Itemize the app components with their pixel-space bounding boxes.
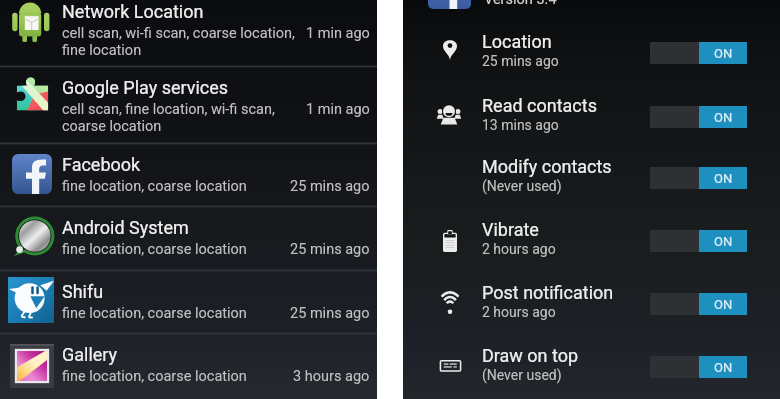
staticText: ON [714, 171, 733, 186]
staticText: coarse location [62, 118, 162, 135]
staticText: (Never used) [482, 178, 562, 194]
staticText: Location [482, 31, 552, 52]
staticText: cell scan, fine location, wi-fi scan, [62, 101, 275, 118]
other: Gallery icon [10, 344, 54, 388]
button[interactable]: Toggle Draw on top [650, 356, 747, 378]
button[interactable]: Toggle Vibrate [650, 230, 747, 252]
staticText: 1 min ago [306, 101, 370, 118]
staticText: 1 min ago [306, 25, 370, 42]
staticText: Vibrate [482, 219, 539, 240]
button[interactable]: Facebook icon [0, 144, 377, 206]
staticText: Draw on top [482, 345, 579, 366]
staticText: Shifu [62, 281, 104, 302]
staticText: Post notification [482, 282, 614, 303]
staticText: fine location [62, 42, 142, 59]
button[interactable]: Google Play services icon [0, 67, 377, 143]
staticText: ON [714, 234, 733, 249]
button[interactable]: Network Location icon [0, 0, 377, 66]
button[interactable]: Draw on top [403, 343, 780, 399]
staticText: fine location, coarse location [62, 178, 247, 195]
staticText: 25 mins ago [290, 305, 370, 322]
staticText: ON [714, 110, 733, 125]
button[interactable]: Post notification [403, 280, 780, 342]
staticText: ON [714, 46, 733, 61]
other: Android System icon [13, 217, 53, 257]
staticText: 25 mins ago [482, 53, 559, 69]
staticText: 2 hours ago [482, 304, 556, 320]
button[interactable]: Toggle Location [650, 42, 747, 64]
staticText: (Never used) [482, 367, 562, 383]
staticText: 2 hours ago [482, 241, 556, 257]
staticText: cell scan, wi-fi scan, coarse location, [62, 25, 295, 42]
staticText: 3 hours ago [293, 368, 370, 385]
button[interactable]: Android System icon [0, 207, 377, 270]
other: Shifu icon [8, 277, 54, 323]
staticText: 25 mins ago [290, 178, 370, 195]
staticText: Version 3.4 [484, 0, 557, 8]
button[interactable]: Read contacts [403, 93, 780, 155]
button[interactable]: Toggle Modify contacts [650, 167, 747, 189]
button[interactable]: Gallery icon [0, 334, 377, 399]
staticText: Modify contacts [482, 156, 612, 177]
staticText: Read contacts [482, 95, 597, 116]
staticText: Gallery [62, 344, 118, 365]
staticText: 13 mins ago [482, 117, 559, 133]
staticText: ON [714, 360, 733, 375]
staticText: Facebook [62, 154, 141, 175]
staticText: Google Play services [62, 77, 229, 98]
button[interactable]: Vibrate [403, 217, 780, 279]
other: Network Location icon [11, 2, 51, 42]
staticText: fine location, coarse location [62, 241, 247, 258]
staticText: Network Location [62, 1, 204, 22]
staticText: fine location, coarse location [62, 368, 247, 385]
staticText: fine location, coarse location [62, 305, 247, 322]
button[interactable]: Modify contacts [403, 154, 780, 216]
staticText: 25 mins ago [290, 241, 370, 258]
button[interactable]: Toggle Read contacts [650, 106, 747, 128]
button[interactable]: Shifu icon [0, 271, 377, 333]
staticText: ON [714, 297, 733, 312]
button[interactable]: Location [403, 29, 780, 91]
staticText: Android System [62, 217, 189, 238]
other: Google Play services icon [14, 75, 51, 112]
other: Facebook icon [12, 154, 52, 194]
button[interactable]: Toggle Post notification [650, 293, 747, 315]
